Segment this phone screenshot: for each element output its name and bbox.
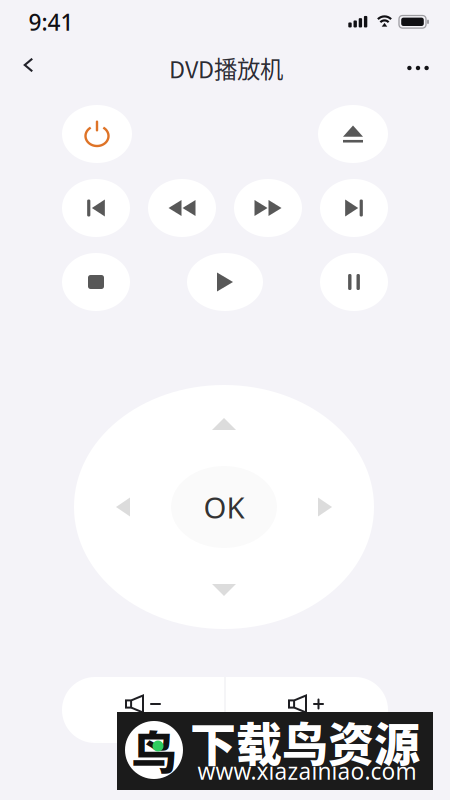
staticText: www.xiazainiao.com [197,756,416,786]
button[interactable]: Pause [320,253,388,311]
button[interactable]: Volume up [225,671,388,737]
button[interactable]: Down [189,562,259,618]
staticText: 鸟 [131,717,176,783]
button[interactable]: Fast forward [234,179,302,237]
staticText: 下载鸟资源 [190,708,420,774]
button[interactable]: Volume down [62,671,225,737]
button[interactable]: Next track [320,179,388,237]
button[interactable]: Up [189,396,259,452]
button[interactable]: Play [187,253,263,311]
button[interactable]: Back [6,43,50,87]
button[interactable]: More options [396,46,440,90]
button[interactable]: Previous track [62,179,130,237]
staticText: 9:41 [28,7,73,37]
button[interactable]: Stop [62,253,130,311]
button[interactable]: Rewind [148,179,216,237]
button[interactable]: Right [297,472,353,542]
button[interactable]: OK [171,466,277,548]
staticText: DVD播放机 [169,51,283,85]
button[interactable]: Power [62,105,132,163]
button[interactable]: Eject [318,105,388,163]
button[interactable]: Left [95,472,151,542]
staticText: OK [203,487,244,526]
